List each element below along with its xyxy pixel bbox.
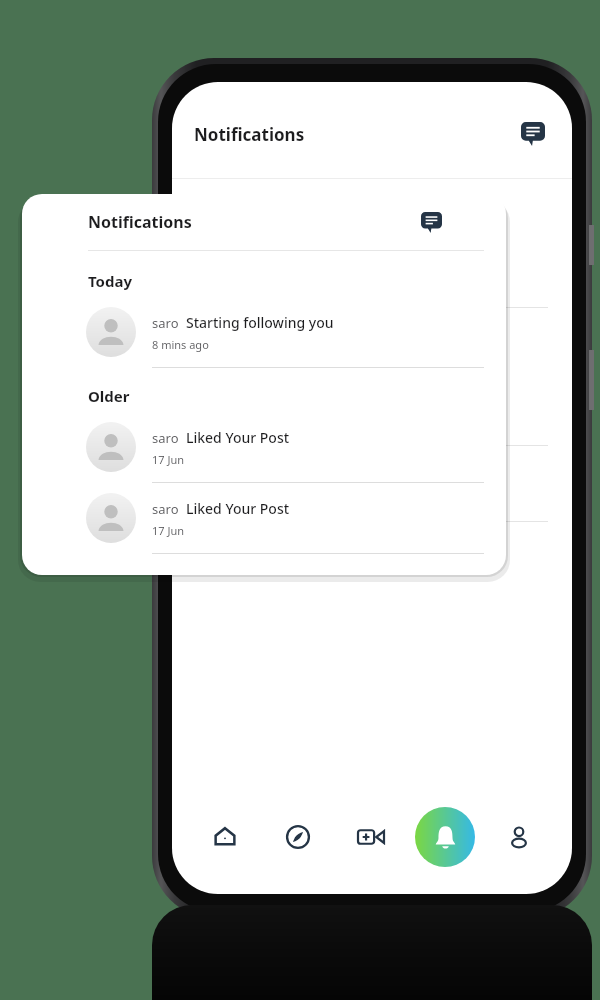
staticText: 17 Jun: [152, 452, 185, 467]
button[interactable]: Explore: [261, 808, 334, 866]
button[interactable]: Messages: [516, 117, 550, 151]
button[interactable]: saro: [22, 297, 506, 368]
button[interactable]: Profile: [482, 808, 556, 866]
staticText: 17 Jun: [152, 523, 185, 538]
staticText: Starting following you: [186, 313, 334, 332]
staticText: Older: [88, 386, 130, 406]
button[interactable]: saro: [22, 483, 506, 554]
button[interactable]: Messages: [416, 207, 446, 237]
button[interactable]: Notifications: [415, 807, 475, 867]
staticText: saro: [152, 500, 179, 518]
button[interactable]: saro: [22, 412, 506, 483]
staticText: 8 mins ago: [152, 337, 209, 352]
staticText: saro: [152, 429, 179, 447]
staticText: saro: [152, 314, 179, 332]
staticText: Liked Your Post: [186, 499, 290, 518]
staticText: Liked Your Post: [186, 428, 290, 447]
staticText: Today: [88, 271, 133, 291]
staticText: Notifications: [194, 123, 305, 146]
staticText: Notifications: [88, 211, 192, 233]
button[interactable]: Home: [188, 808, 261, 866]
button[interactable]: Create video: [334, 808, 408, 866]
